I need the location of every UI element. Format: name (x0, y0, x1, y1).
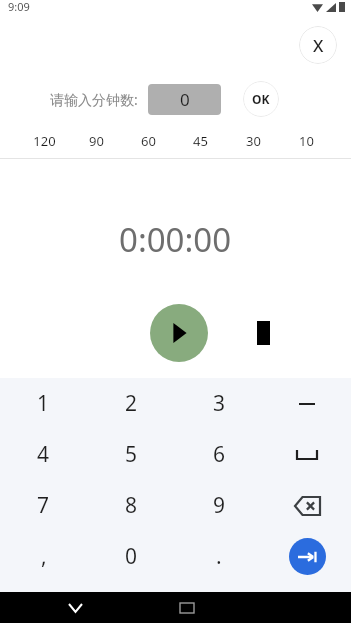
button[interactable]: Close (299, 26, 337, 64)
button[interactable]: Switch keyboard (173, 594, 201, 622)
staticText: 2 (125, 389, 138, 418)
staticText: 10 (299, 132, 314, 150)
staticText: 7 (37, 491, 50, 520)
staticText: , (41, 542, 47, 571)
button[interactable]: , (0, 531, 87, 582)
staticText: 4 (37, 440, 50, 469)
button[interactable]: 9 (175, 480, 263, 531)
staticText: 90 (89, 132, 104, 150)
button[interactable]: 2 (87, 378, 175, 429)
staticText: 120 (33, 132, 56, 150)
staticText: 9:09 (8, 0, 30, 14)
button[interactable]: 90 (70, 124, 122, 158)
button[interactable]: 8 (87, 480, 175, 531)
button[interactable]: 6 (175, 429, 263, 480)
staticText: X (313, 34, 324, 57)
staticText: 0:00:00 (119, 217, 232, 262)
staticText: 45 (193, 132, 208, 150)
button[interactable]: 120 (18, 124, 70, 158)
button[interactable]: 30 (227, 124, 280, 158)
button[interactable]: 45 (174, 124, 227, 158)
button[interactable]: Enter (263, 531, 351, 582)
button[interactable]: . (175, 531, 263, 582)
button[interactable]: 7 (0, 480, 87, 531)
button[interactable]: 4 (0, 429, 87, 480)
staticText: 0 (125, 542, 138, 571)
button[interactable]: 3 (175, 378, 263, 429)
button[interactable]: 0 (148, 84, 221, 115)
button[interactable]: 10 (280, 124, 333, 158)
button[interactable]: OK (243, 81, 279, 117)
staticText: 30 (246, 132, 261, 150)
staticText: 1 (37, 389, 50, 418)
button[interactable]: Hide keyboard (60, 593, 90, 623)
button[interactable]: 0 (87, 531, 175, 582)
staticText: 8 (125, 491, 138, 520)
button[interactable]: Start (150, 304, 208, 362)
staticText: . (216, 542, 222, 571)
button[interactable]: 1 (0, 378, 87, 429)
button[interactable]: 5 (87, 429, 175, 480)
staticText: 9 (213, 491, 226, 520)
staticText: 3 (213, 389, 226, 418)
button[interactable]: Stop (243, 313, 283, 353)
button[interactable]: 60 (122, 124, 174, 158)
staticText: OK (252, 91, 270, 107)
staticText: 60 (141, 132, 156, 150)
button[interactable]: Dash (263, 378, 351, 429)
button[interactable]: Delete (263, 480, 351, 531)
staticText: 5 (125, 440, 138, 469)
staticText: 请输入分钟数: (50, 90, 138, 109)
staticText: 0 (180, 88, 190, 111)
button[interactable]: Space (263, 429, 351, 480)
staticText: 6 (213, 440, 226, 469)
